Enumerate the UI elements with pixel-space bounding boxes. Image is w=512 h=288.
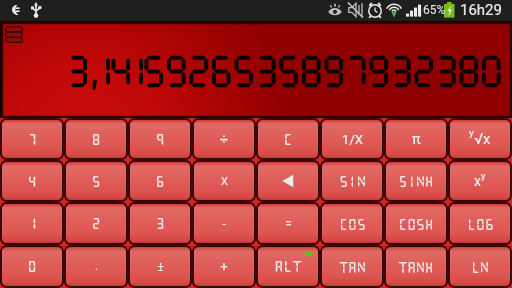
button[interactable]: 4: [2, 162, 62, 200]
staticText: ALT: [274, 259, 302, 274]
button[interactable]: 9: [130, 120, 190, 158]
button[interactable]: 3: [130, 204, 190, 243]
button[interactable]: ÷: [194, 120, 254, 158]
button[interactable]: Backspace: [258, 162, 318, 200]
button[interactable]: LN: [450, 247, 510, 286]
staticText: 1/X: [342, 132, 363, 147]
staticText: 7: [27, 132, 37, 147]
staticText: 0: [27, 259, 37, 274]
button[interactable]: LOG: [450, 204, 510, 243]
staticText: +: [220, 259, 228, 274]
button[interactable]: ALT: [258, 247, 318, 286]
button[interactable]: TAN: [322, 247, 382, 286]
staticText: COS: [339, 217, 366, 231]
staticText: 16h29: [460, 1, 502, 19]
staticText: π: [412, 131, 421, 147]
button[interactable]: +: [194, 247, 254, 286]
button[interactable]: x power y: [450, 162, 510, 200]
button[interactable]: COSH: [386, 204, 446, 243]
button[interactable]: SINH: [386, 162, 446, 200]
button[interactable]: 1: [2, 204, 62, 243]
button[interactable]: .: [66, 247, 126, 286]
staticText: TANH: [398, 260, 434, 274]
button[interactable]: TANH: [386, 247, 446, 286]
staticText: ±: [157, 260, 164, 274]
staticText: 4: [27, 174, 37, 189]
staticText: LOG: [467, 217, 494, 231]
staticText: 8: [91, 132, 101, 147]
staticText: C: [283, 132, 293, 147]
staticText: X: [221, 175, 228, 188]
staticText: 6: [155, 174, 165, 189]
staticText: LN: [471, 260, 489, 274]
button[interactable]: ±: [130, 247, 190, 286]
staticText: y: [469, 127, 474, 139]
staticText: TAN: [339, 260, 366, 274]
button[interactable]: COS: [322, 204, 382, 243]
button[interactable]: -: [194, 204, 254, 243]
button[interactable]: 5: [66, 162, 126, 200]
staticText: COSH: [398, 217, 434, 231]
button[interactable]: SIN: [322, 162, 382, 200]
staticText: =: [285, 217, 292, 231]
staticText: SINH: [398, 174, 434, 188]
staticText: √x: [474, 130, 491, 148]
button[interactable]: 0: [2, 247, 62, 286]
button[interactable]: 8: [66, 120, 126, 158]
staticText: 9: [155, 132, 165, 147]
button[interactable]: 6: [130, 162, 190, 200]
staticText: x: [474, 173, 481, 189]
button[interactable]: π: [386, 120, 446, 158]
staticText: SIN: [339, 174, 366, 188]
button[interactable]: y root x: [450, 120, 510, 158]
button[interactable]: =: [258, 204, 318, 243]
staticText: 65%: [423, 3, 446, 17]
staticText: -: [222, 216, 226, 231]
staticText: y: [481, 170, 486, 181]
staticText: 2: [91, 216, 101, 231]
button[interactable]: 1/X: [322, 120, 382, 158]
button[interactable]: C: [258, 120, 318, 158]
button[interactable]: 7: [2, 120, 62, 158]
staticText: 5: [91, 174, 101, 189]
button[interactable]: X: [194, 162, 254, 200]
button[interactable]: 2: [66, 204, 126, 243]
staticText: 1: [27, 216, 37, 231]
staticText: .: [95, 260, 98, 273]
staticText: 3: [155, 216, 165, 231]
staticText: ÷: [220, 131, 228, 147]
